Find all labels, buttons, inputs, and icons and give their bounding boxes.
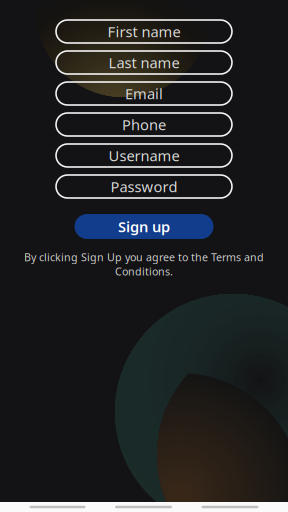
button[interactable]: Username — [56, 144, 232, 167]
staticText: Username — [108, 146, 179, 165]
button[interactable]: Phone — [56, 113, 232, 136]
staticText: Email — [125, 84, 163, 103]
staticText: Password — [110, 177, 177, 196]
button[interactable]: Password — [56, 175, 232, 198]
staticText: Sign up — [118, 217, 170, 236]
button[interactable]: Email — [56, 82, 232, 105]
button[interactable]: Sign up — [74, 214, 213, 239]
staticText: Conditions. — [115, 264, 173, 278]
button[interactable]: First name — [56, 20, 232, 43]
staticText: Phone — [122, 115, 166, 134]
staticText: By clicking Sign Up you agree to the Ter… — [24, 250, 264, 264]
staticText: First name — [107, 22, 180, 41]
button[interactable]: Last name — [56, 51, 232, 74]
staticText: Last name — [108, 53, 179, 72]
